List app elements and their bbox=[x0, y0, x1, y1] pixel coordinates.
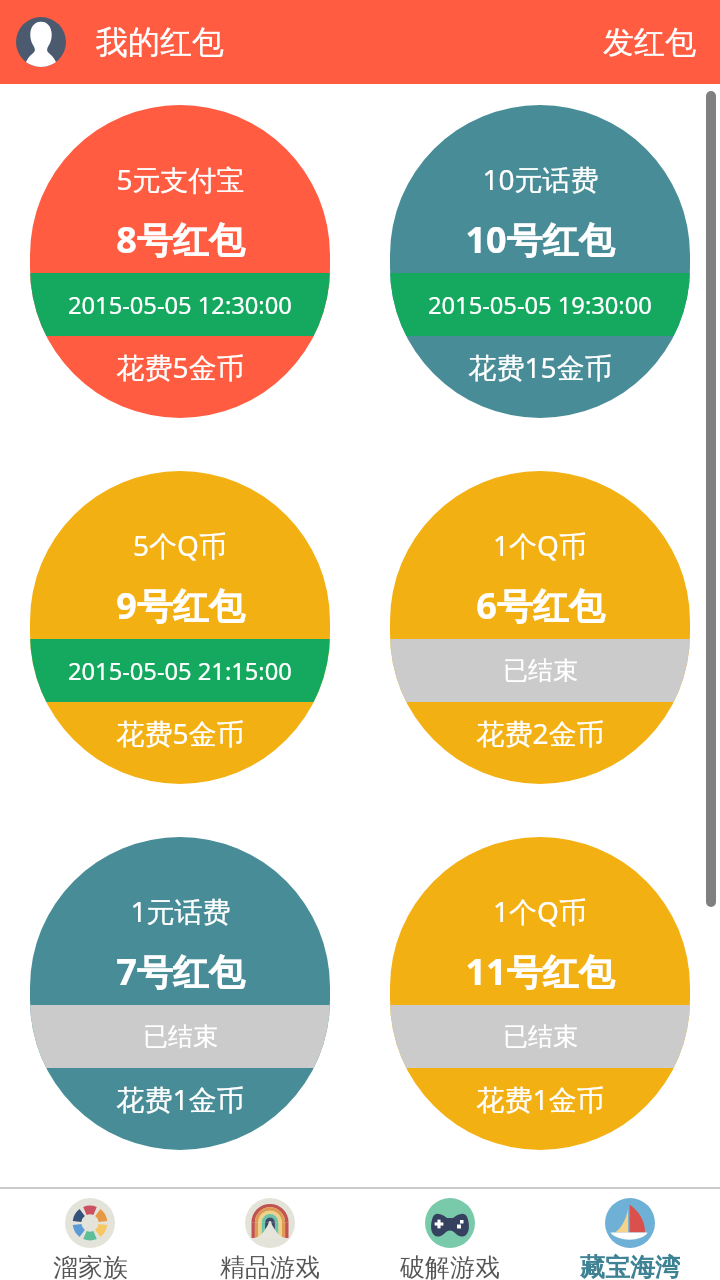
staticText: 我的红包 bbox=[96, 22, 224, 62]
staticText: 已结束 bbox=[503, 1021, 578, 1052]
staticText: 5元支付宝 bbox=[116, 160, 245, 198]
staticText: 11号红包 bbox=[465, 947, 615, 996]
staticText: 8号红包 bbox=[116, 215, 245, 264]
staticText: 6号红包 bbox=[476, 581, 605, 630]
staticText: 7号红包 bbox=[116, 947, 245, 996]
staticText: 花费1金币 bbox=[476, 1080, 605, 1118]
button[interactable]: 1个Q币 bbox=[390, 837, 690, 1150]
staticText: 花费5金币 bbox=[116, 348, 245, 386]
staticText: 10元话费 bbox=[482, 160, 599, 198]
staticText: 5个Q币 bbox=[133, 526, 227, 564]
button[interactable]: 精品游戏 bbox=[180, 1189, 360, 1280]
staticText: 已结束 bbox=[503, 655, 578, 686]
staticText: 9号红包 bbox=[116, 581, 245, 630]
button[interactable]: 破解游戏 bbox=[360, 1189, 540, 1280]
staticText: 花费15金币 bbox=[468, 348, 613, 386]
button[interactable]: Profile bbox=[16, 17, 66, 67]
staticText: 2015-05-05 12:30:00 bbox=[68, 289, 292, 321]
staticText: 藏宝海湾 bbox=[580, 1252, 680, 1280]
staticText: 破解游戏 bbox=[400, 1252, 500, 1280]
button[interactable]: 我的红包 bbox=[80, 12, 240, 72]
button[interactable]: 10元话费 bbox=[390, 105, 690, 418]
button[interactable]: 发红包 bbox=[587, 13, 712, 72]
button[interactable]: 1元话费 bbox=[30, 837, 330, 1150]
staticText: 1个Q币 bbox=[493, 526, 587, 564]
button[interactable]: 5元支付宝 bbox=[30, 105, 330, 418]
staticText: 已结束 bbox=[143, 1021, 218, 1052]
button[interactable]: 1个Q币 bbox=[390, 471, 690, 784]
staticText: 1个Q币 bbox=[493, 892, 587, 930]
staticText: 花费1金币 bbox=[116, 1080, 245, 1118]
staticText: 花费2金币 bbox=[476, 714, 605, 752]
button[interactable]: 溜家族 bbox=[0, 1189, 180, 1280]
staticText: 发红包 bbox=[603, 23, 696, 62]
staticText: 1元话费 bbox=[130, 892, 231, 930]
staticText: 精品游戏 bbox=[220, 1252, 320, 1280]
staticText: 10号红包 bbox=[465, 215, 615, 264]
button[interactable]: 5个Q币 bbox=[30, 471, 330, 784]
staticText: 花费5金币 bbox=[116, 714, 245, 752]
staticText: 2015-05-05 21:15:00 bbox=[68, 655, 292, 687]
staticText: 2015-05-05 19:30:00 bbox=[428, 289, 652, 321]
staticText: 溜家族 bbox=[53, 1252, 128, 1280]
button[interactable]: 藏宝海湾 bbox=[540, 1189, 720, 1280]
